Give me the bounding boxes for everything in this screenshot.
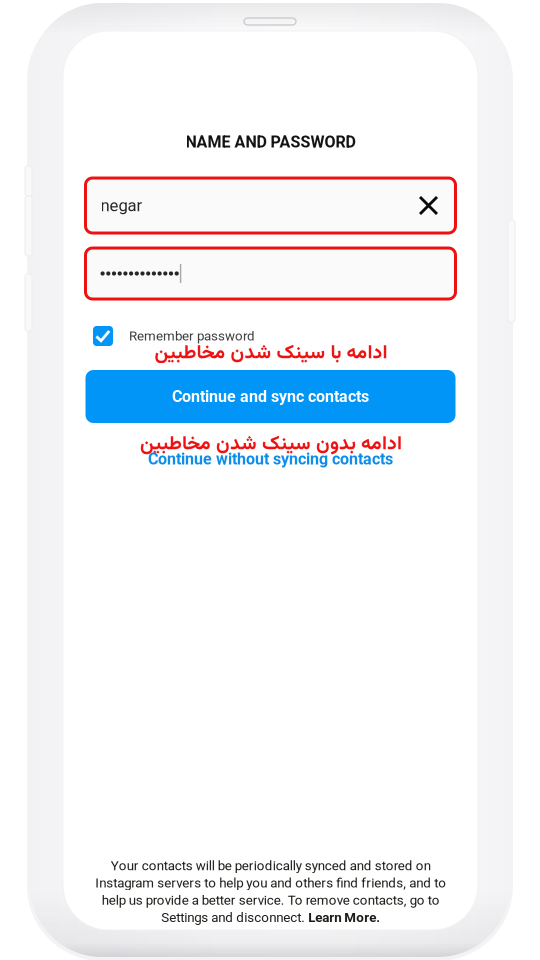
staticText: Remember password <box>129 328 255 344</box>
staticText: Your contacts will be periodically synce… <box>95 858 446 925</box>
button[interactable] <box>85 248 455 299</box>
staticText: negar <box>100 196 142 215</box>
button[interactable]: Clear text <box>416 193 440 217</box>
staticText: Continue without syncing contacts <box>148 450 393 468</box>
button[interactable]: negar <box>85 178 455 233</box>
staticText: ادامه بدون سینک شدن مخاطبین <box>139 429 401 460</box>
button[interactable]: Remember password <box>93 326 448 346</box>
staticText: ادامه با سینک شدن مخاطبین <box>154 338 387 369</box>
button[interactable]: Continue without syncing contacts <box>148 451 393 467</box>
staticText: Continue and sync contacts <box>172 387 369 406</box>
staticText: NAME AND PASSWORD <box>185 133 355 151</box>
button[interactable]: Continue and sync contacts <box>85 370 455 423</box>
